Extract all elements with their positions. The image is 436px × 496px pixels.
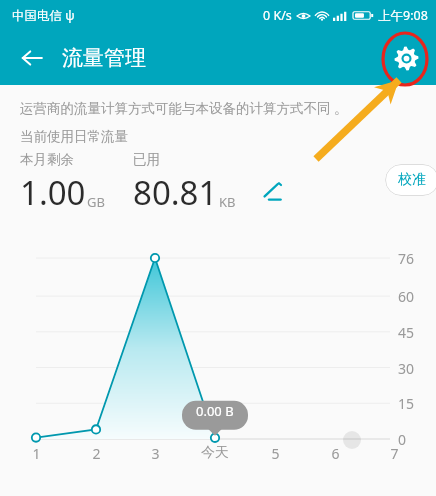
staticText: 已用 [133,151,160,168]
staticText: 流量管理 [62,45,146,71]
staticText: GB [87,193,105,211]
staticText: 0.00 B [196,402,234,420]
staticText: 60 [398,287,415,306]
button[interactable]: Back [12,38,52,78]
staticText: 1.00 [20,170,86,215]
staticText: 6 [331,444,340,463]
staticText: 2 [92,444,101,463]
staticText: 校准 [398,171,426,189]
staticText: 3 [151,444,160,463]
staticText: 7 [390,444,399,463]
button[interactable]: Settings [384,36,428,80]
staticText: 0 [398,430,407,449]
staticText: 上午9:08 [378,7,428,24]
staticText: 今天 [201,444,229,462]
staticText: 80.81 [133,170,218,215]
staticText: 30 [398,359,415,378]
staticText: 1 [32,444,41,463]
staticText: 45 [398,323,415,342]
staticText: KB [219,193,236,211]
staticText: 5 [271,444,280,463]
staticText: 76 [398,249,415,268]
staticText: 当前使用日常流量 [20,128,128,145]
staticText: 15 [398,394,415,413]
button[interactable]: Edit [256,175,290,209]
staticText: 中国电信 ψ [12,7,75,24]
button[interactable]: 校准 [385,164,436,196]
staticText: 运营商的流量计算方式可能与本设备的计算方式不同 。 [20,99,348,117]
staticText: 0 K/s [263,7,292,24]
staticText: 本月剩余 [20,151,74,168]
